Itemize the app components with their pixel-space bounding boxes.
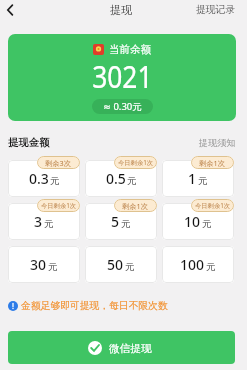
staticText: 今日剩余1次 [118, 158, 154, 167]
staticText: 金额足够即可提现，每日不限次数 [21, 300, 168, 312]
staticText: 5 [111, 212, 120, 231]
button[interactable]: 10 [162, 203, 234, 240]
button[interactable]: 5 [85, 203, 157, 240]
button[interactable]: 100 [162, 246, 234, 283]
staticText: 提现记录 [196, 4, 236, 16]
staticText: 10 [184, 212, 201, 231]
staticText: 微信提现 [109, 342, 152, 355]
staticText: 0.3 [29, 169, 49, 188]
staticText: 3021 [92, 56, 153, 97]
staticText: 元 [48, 261, 58, 273]
staticText: 提现须知 [199, 137, 236, 149]
staticText: 0.5 [106, 169, 126, 188]
staticText: 元 [198, 175, 208, 187]
button[interactable]: 微信提现 [8, 331, 235, 364]
button[interactable]: 1 [162, 160, 234, 197]
staticText: 1 [188, 169, 197, 188]
staticText: 剩余1次 [122, 201, 149, 211]
staticText: 3 [34, 212, 43, 231]
staticText: 50 [107, 255, 124, 274]
staticText: 今日剩余1次 [41, 201, 77, 210]
button[interactable]: Back [0, 0, 19, 19]
staticText: 元 [50, 175, 60, 187]
button[interactable]: 30 [8, 246, 80, 283]
staticText: 30 [30, 255, 47, 274]
staticText: 当前余额 [109, 43, 151, 56]
button[interactable]: 提现记录 [185, 1, 247, 19]
button[interactable]: 50 [85, 246, 157, 283]
button[interactable]: 提现须知 [199, 134, 247, 149]
staticText: 元 [206, 261, 216, 273]
staticText: 提现金额 [8, 136, 50, 149]
staticText: 剩余1次 [199, 158, 226, 168]
button[interactable]: 3 [8, 203, 80, 240]
staticText: 提现 [110, 3, 132, 17]
staticText: 100 [180, 255, 205, 274]
staticText: 今日剩余1次 [195, 201, 231, 210]
staticText: 元 [202, 218, 212, 230]
staticText: 剩余3次 [45, 158, 72, 168]
staticText: ≈ 0.30元 [103, 100, 142, 113]
staticText: 元 [125, 261, 135, 273]
button[interactable]: 0.3 [8, 160, 80, 197]
staticText: 元 [44, 218, 54, 230]
staticText: 元 [121, 218, 131, 230]
staticText: 元 [127, 175, 137, 187]
button[interactable]: 0.5 [85, 160, 157, 197]
